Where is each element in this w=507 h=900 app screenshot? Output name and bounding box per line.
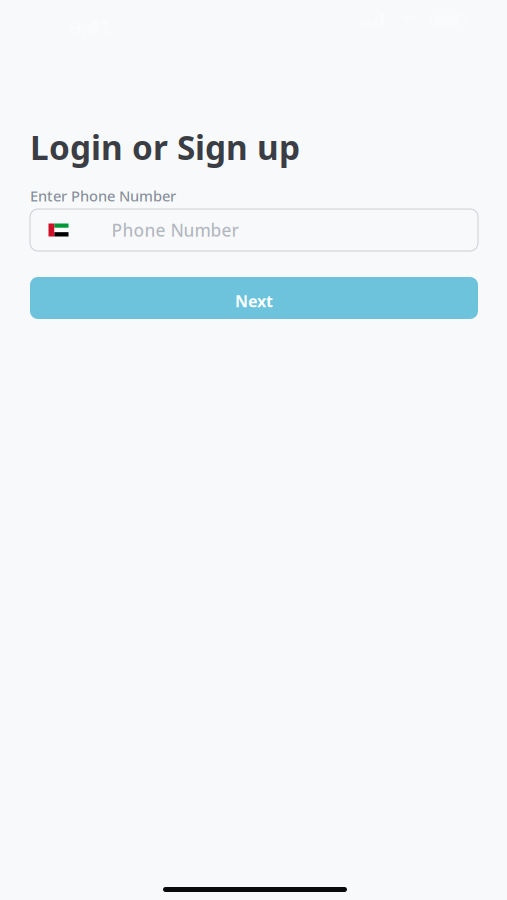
button[interactable]: Phone Number [30, 209, 478, 251]
button[interactable]: Next [30, 277, 478, 319]
staticText: Phone Number [111, 218, 238, 241]
staticText: Login or Sign up [30, 125, 300, 169]
staticText: Next [235, 290, 273, 312]
staticText: Enter Phone Number [30, 186, 176, 205]
